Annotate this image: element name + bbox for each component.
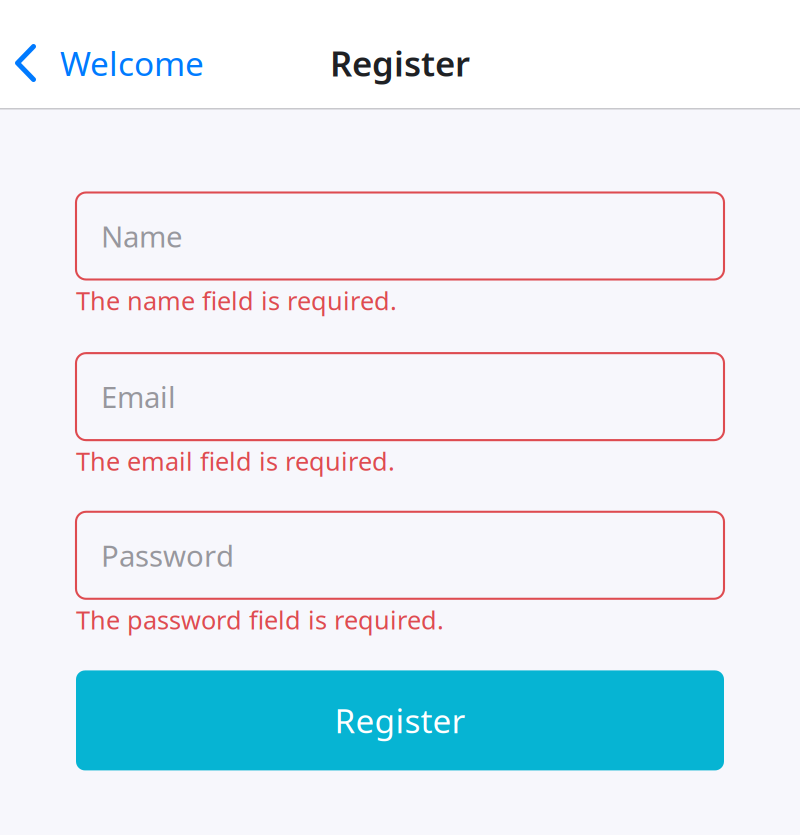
- staticText: The email field is required.: [76, 444, 395, 478]
- button[interactable]: Register: [76, 670, 724, 770]
- staticText: Welcome: [60, 41, 204, 85]
- button[interactable]: Email: [76, 353, 724, 440]
- staticText: Email: [101, 377, 176, 416]
- staticText: The name field is required.: [76, 283, 397, 317]
- staticText: The password field is required.: [76, 603, 444, 636]
- staticText: Password: [101, 536, 234, 575]
- staticText: Name: [101, 216, 183, 255]
- button[interactable]: Back to Welcome: [0, 29, 216, 97]
- button[interactable]: Name: [76, 192, 724, 279]
- staticText: Register: [330, 40, 470, 86]
- staticText: Register: [334, 698, 465, 743]
- button[interactable]: Password: [76, 512, 724, 599]
